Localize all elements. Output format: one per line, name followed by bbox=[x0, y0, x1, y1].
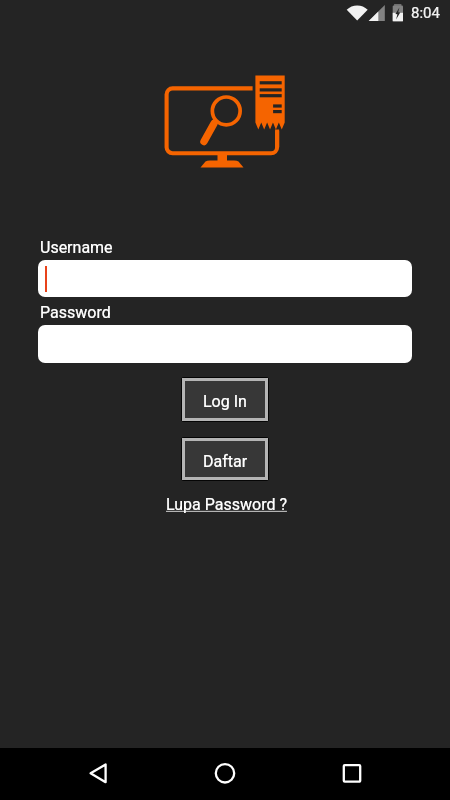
button[interactable]: Log In bbox=[185, 381, 265, 418]
button[interactable] bbox=[38, 325, 412, 363]
button[interactable]: Recent apps bbox=[326, 748, 376, 797]
button[interactable]: Back bbox=[73, 748, 123, 797]
button[interactable]: Home bbox=[200, 748, 250, 797]
staticText: Log In bbox=[203, 392, 247, 411]
staticText: Password bbox=[40, 303, 111, 322]
button[interactable]: Lupa Password ? bbox=[166, 495, 287, 514]
staticText: Daftar bbox=[203, 452, 248, 471]
staticText: 8:04 bbox=[411, 4, 440, 22]
staticText: Lupa Password ? bbox=[166, 495, 287, 514]
button[interactable] bbox=[38, 260, 412, 297]
staticText: Username bbox=[40, 238, 113, 257]
button[interactable]: Daftar bbox=[185, 441, 265, 477]
